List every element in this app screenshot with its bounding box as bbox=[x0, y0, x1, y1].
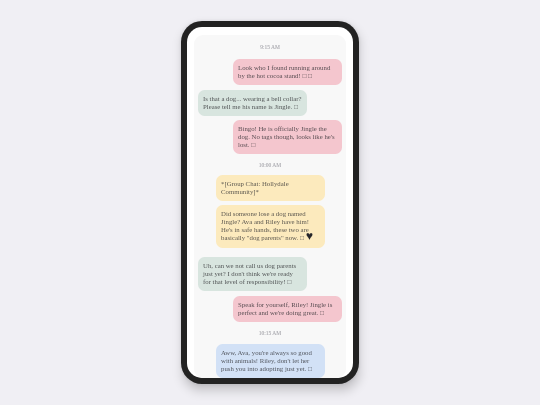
button[interactable]: Uh, can we not call us dog parents just … bbox=[198, 257, 307, 291]
staticText: 9:15 AM bbox=[198, 44, 342, 50]
staticText: Bingo! He is officially Jingle the dog. … bbox=[238, 125, 337, 149]
staticText: Speak for yourself, Riley! Jingle is per… bbox=[238, 301, 337, 317]
staticText: Did someone lose a dog named Jingle? Ava… bbox=[221, 210, 320, 243]
button[interactable]: Bingo! He is officially Jingle the dog. … bbox=[233, 120, 342, 154]
staticText: 10:00 AM bbox=[198, 162, 342, 168]
staticText: Look who I found running around by the h… bbox=[238, 64, 337, 80]
button[interactable]: Look who I found running around by the h… bbox=[233, 59, 342, 85]
button[interactable]: Speak for yourself, Riley! Jingle is per… bbox=[233, 296, 342, 322]
button[interactable]: *[Group Chat: Hollydale Community]* bbox=[216, 175, 325, 201]
button[interactable]: Did someone lose a dog named Jingle? Ava… bbox=[216, 205, 325, 248]
staticText: Aww, Ava, you're always so good with ani… bbox=[221, 349, 320, 373]
staticText: Uh, can we not call us dog parents just … bbox=[203, 262, 302, 286]
staticText: 10:15 AM bbox=[198, 330, 342, 336]
staticText: Is that a dog... wearing a bell collar? … bbox=[203, 95, 302, 111]
button[interactable]: Is that a dog... wearing a bell collar? … bbox=[198, 90, 307, 116]
staticText: *[Group Chat: Hollydale Community]* bbox=[221, 180, 320, 196]
button[interactable]: Aww, Ava, you're always so good with ani… bbox=[216, 344, 325, 378]
